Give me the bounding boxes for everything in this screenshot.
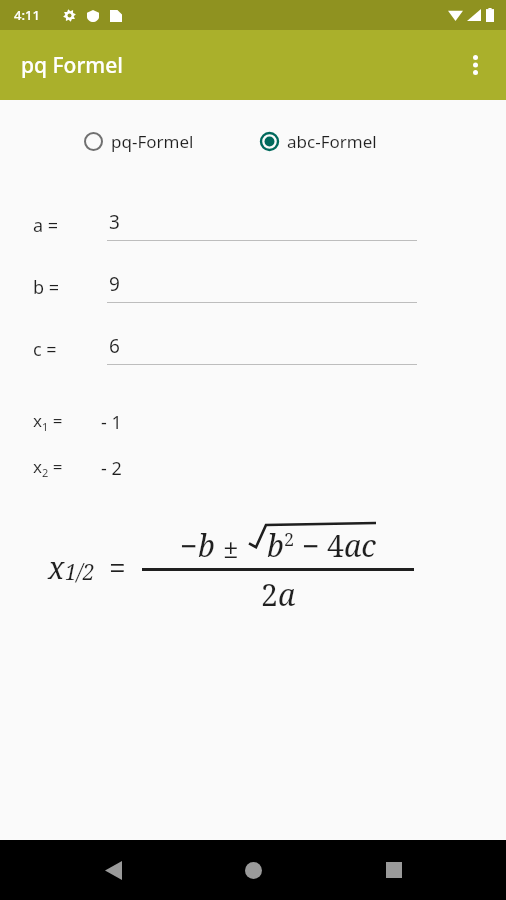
staticText: 2 — [261, 574, 278, 615]
staticText: a = — [33, 213, 59, 238]
staticText: b — [267, 525, 284, 566]
staticText: = — [109, 547, 126, 588]
staticText: − — [180, 525, 198, 566]
staticText: 3 — [109, 209, 120, 235]
staticText: 1/2 — [65, 558, 95, 587]
staticText: - 1 — [101, 410, 122, 435]
staticText: 4:11 — [14, 6, 40, 24]
staticText: ac — [344, 525, 376, 566]
staticText: abc-Formel — [287, 130, 377, 153]
staticText: - 2 — [101, 456, 122, 481]
button[interactable]: Home — [225, 842, 281, 898]
staticText: b — [198, 525, 215, 566]
staticText: − — [302, 525, 320, 566]
button[interactable]: More options — [452, 42, 498, 88]
button[interactable]: Back — [85, 842, 141, 898]
button[interactable]: 6 — [107, 333, 417, 365]
staticText: ± — [223, 528, 239, 566]
staticText: a — [278, 574, 296, 615]
staticText: 2 — [284, 527, 295, 552]
staticText: 4 — [327, 525, 344, 566]
staticText: b = — [33, 275, 60, 300]
button[interactable]: Recent apps — [366, 842, 422, 898]
button[interactable]: 3 — [107, 209, 417, 241]
staticText: x1 = — [33, 409, 63, 435]
staticText: 6 — [109, 333, 120, 359]
staticText: c = — [33, 337, 57, 362]
button[interactable]: abc-Formel — [260, 126, 377, 157]
staticText: 9 — [109, 271, 120, 297]
staticText: pq Formel — [21, 51, 123, 80]
button[interactable]: pq-Formel — [84, 126, 194, 157]
staticText: pq-Formel — [111, 130, 194, 153]
staticText: x — [48, 547, 65, 588]
button[interactable]: 9 — [107, 271, 417, 303]
staticText: x2 = — [33, 455, 63, 481]
